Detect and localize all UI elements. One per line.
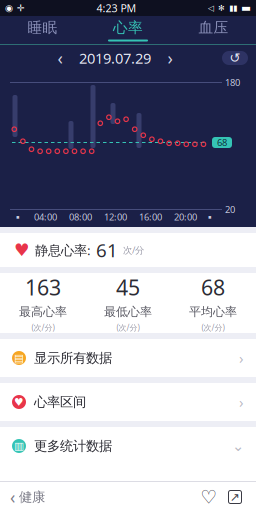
staticText: ◁: [208, 3, 214, 13]
button[interactable]: 血压: [171, 16, 256, 44]
staticText: ‹: [57, 46, 62, 69]
staticText: 更多统计数据: [34, 438, 112, 454]
staticText: (次/分): [116, 322, 139, 333]
staticText: 20: [225, 203, 235, 216]
staticText: ♥: [14, 240, 30, 260]
staticText: (次/分): [31, 322, 54, 333]
staticText: ▮▮: [229, 3, 237, 13]
staticText: ✛: [17, 3, 25, 13]
button[interactable]: ▥: [0, 427, 256, 465]
staticText: 68: [201, 273, 225, 301]
staticText: 12:00: [104, 211, 127, 223]
staticText: ›: [167, 46, 172, 69]
staticText: ▬: [241, 2, 251, 14]
staticText: ›: [239, 392, 244, 412]
staticText: ↗: [230, 490, 240, 504]
staticText: ↺: [229, 50, 240, 65]
staticText: 2019.07.29: [79, 48, 151, 68]
staticText: 血压: [198, 18, 228, 36]
staticText: 次/分: [123, 244, 144, 256]
button[interactable]: Previous day: [51, 49, 69, 67]
staticText: ▪: [16, 214, 20, 220]
staticText: 163: [25, 273, 61, 301]
staticText: 68: [217, 136, 227, 149]
staticText: 最低心率: [104, 304, 152, 319]
staticText: 04:00: [34, 211, 57, 223]
staticText: 心率区间: [34, 394, 86, 410]
button[interactable]: 睡眠: [0, 16, 85, 44]
staticText: ▪: [208, 214, 212, 220]
staticText: ▤: [14, 352, 24, 364]
staticText: 08:00: [69, 211, 92, 223]
button[interactable]: ‹: [0, 482, 55, 512]
button[interactable]: 心率: [85, 16, 171, 44]
staticText: 20:00: [174, 211, 197, 223]
staticText: ⌄: [232, 438, 244, 454]
staticText: ♥: [14, 396, 24, 408]
staticText: 180: [225, 76, 240, 89]
button[interactable]: ♥: [0, 383, 256, 421]
staticText: 16:00: [139, 211, 162, 223]
staticText: ✻: [218, 3, 225, 13]
staticText: 静息心率:: [35, 241, 91, 259]
button[interactable]: Refresh: [222, 51, 248, 65]
button[interactable]: Next day: [161, 49, 179, 67]
button[interactable]: Share: [222, 482, 248, 512]
staticText: (次/分): [201, 322, 224, 333]
staticText: 4:23 PM: [96, 1, 136, 15]
staticText: ›: [239, 348, 244, 368]
staticText: 显示所有数据: [34, 350, 112, 366]
staticText: 平均心率: [189, 304, 237, 319]
button[interactable]: ▤: [0, 339, 256, 377]
staticText: 心率: [113, 18, 143, 36]
staticText: ▥: [14, 440, 24, 452]
button[interactable]: Heart rate: [196, 482, 222, 512]
staticText: 45: [116, 273, 140, 301]
staticText: ♡: [200, 486, 217, 508]
staticText: 61: [96, 238, 118, 262]
staticText: ‹: [10, 485, 15, 508]
staticText: 睡眠: [27, 18, 57, 36]
staticText: 健康: [19, 489, 45, 505]
staticText: 最高心率: [19, 304, 67, 319]
staticText: ◉: [5, 3, 13, 13]
